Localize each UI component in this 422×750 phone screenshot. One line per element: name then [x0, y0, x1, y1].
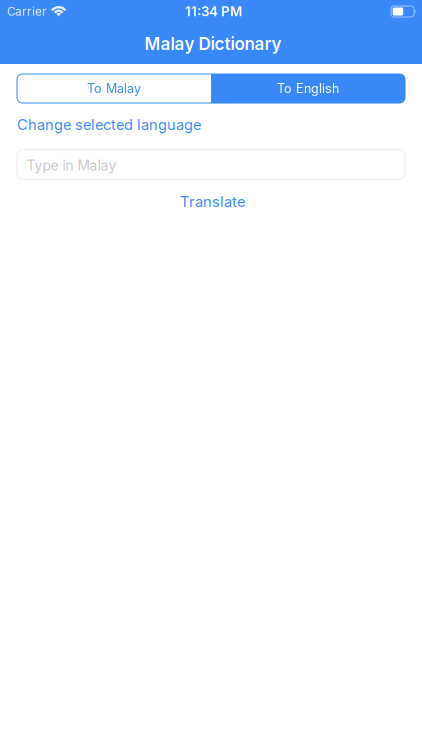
button[interactable]: To English: [211, 74, 405, 103]
button[interactable]: Change selected language: [17, 116, 201, 134]
staticText: Change selected language: [17, 116, 201, 134]
staticText: Translate: [180, 193, 246, 210]
staticText: Carrier: [7, 4, 46, 18]
staticText: 11:34 PM: [185, 3, 242, 19]
button[interactable]: To Malay: [17, 74, 211, 103]
button[interactable]: Type in Malay: [17, 150, 405, 180]
button[interactable]: Translate: [17, 191, 405, 213]
staticText: To Malay: [87, 81, 141, 96]
staticText: To English: [277, 81, 339, 96]
staticText: Malay Dictionary: [144, 33, 281, 54]
staticText: Type in Malay: [26, 157, 116, 174]
